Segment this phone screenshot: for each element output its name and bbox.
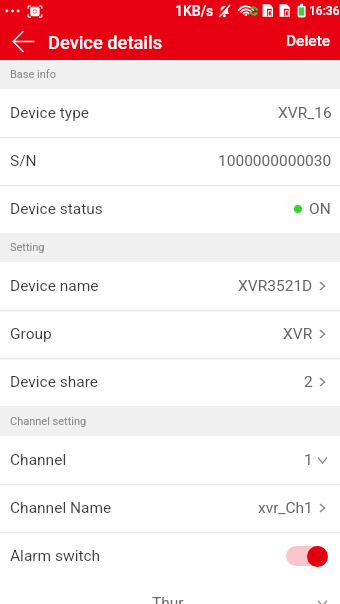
staticText: S/N (10, 152, 37, 170)
staticText: XVR3521D (238, 277, 313, 295)
staticText: XVR (283, 325, 313, 343)
button[interactable]: Back (3, 22, 43, 60)
staticText: Device name (10, 277, 99, 295)
button[interactable]: Channel (0, 436, 340, 484)
button[interactable]: Device type (0, 89, 340, 137)
button[interactable]: Device status (0, 185, 340, 233)
staticText: Device share (10, 373, 99, 391)
staticText: 1000000000030 (218, 152, 332, 170)
staticText: 1 (304, 451, 313, 469)
staticText: Device type (10, 104, 90, 122)
button[interactable]: Device name (0, 262, 340, 310)
staticText: 1KB/s (175, 3, 214, 19)
button[interactable]: S/N (0, 137, 340, 185)
staticText: xvr_Ch1 (258, 499, 313, 517)
staticText: Channel setting (10, 415, 87, 428)
button[interactable]: Device share (0, 358, 340, 406)
staticText: Base info (10, 68, 56, 81)
staticText: Alarm switch (10, 547, 101, 565)
staticText: Device status (10, 200, 103, 218)
staticText: Group (10, 325, 52, 343)
staticText: ON (309, 200, 331, 218)
staticText: 16:36 (309, 4, 340, 18)
button[interactable]: Group (0, 310, 340, 358)
staticText: XVR_16 (278, 104, 332, 122)
staticText: 2 (304, 373, 313, 391)
button[interactable]: Alarm switch (0, 532, 340, 580)
button[interactable]: Channel Name (0, 484, 340, 532)
staticText: Delete (286, 32, 331, 50)
button[interactable]: Alarm switch (286, 545, 328, 567)
staticText: Setting (10, 241, 45, 254)
staticText: Channel (10, 451, 67, 469)
button[interactable]: Delete (277, 24, 340, 58)
staticText: Channel Name (10, 499, 112, 517)
button[interactable]: Thur (0, 580, 340, 604)
staticText: Thur (152, 594, 184, 604)
staticText: Device details (48, 32, 163, 53)
